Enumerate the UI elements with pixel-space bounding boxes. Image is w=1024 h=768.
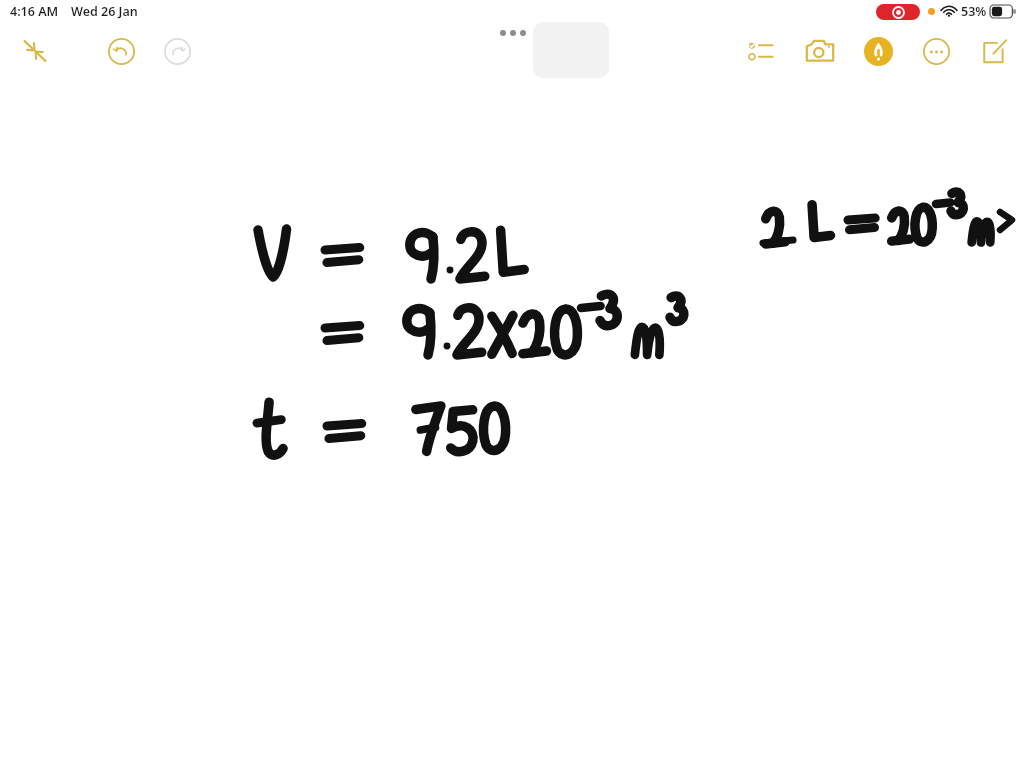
button[interactable]: Undo <box>99 29 143 73</box>
staticText: Wed 26 Jan <box>71 3 138 20</box>
button[interactable]: Pen <box>856 29 900 73</box>
button[interactable]: Collapse <box>13 29 57 73</box>
button[interactable]: More options <box>914 29 958 73</box>
staticText: 53% <box>961 3 987 20</box>
button[interactable]: New note <box>972 29 1016 73</box>
staticText: 4:16 AM <box>10 3 59 20</box>
button[interactable]: Camera <box>797 28 843 74</box>
button[interactable]: Redo <box>155 29 199 73</box>
button[interactable]: Checklist <box>739 29 783 73</box>
